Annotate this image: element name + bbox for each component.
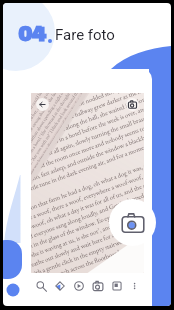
staticText: 04 — [18, 23, 46, 46]
button[interactable]: Gallery — [110, 279, 124, 293]
button[interactable]: Play — [72, 279, 86, 293]
staticText: Dale’s tremulous voice rings out: a thin… — [31, 114, 144, 236]
staticText: ‘And on that farm he had a dog, ee-i-ee-… — [31, 130, 144, 253]
staticText: a long pause, then a whisper so that no … — [31, 93, 90, 172]
staticText: g a night on my own in a hotel.’ She fro… — [31, 93, 144, 211]
staticText: and somewhere far below a door closes wi… — [67, 93, 144, 225]
button[interactable]: More options — [129, 279, 143, 293]
staticText: Ee-eye-ee-eye-oh. A glimpse of her refle… — [31, 167, 144, 273]
button[interactable]: Back — [36, 98, 49, 111]
staticText: Fare foto — [55, 26, 115, 44]
button[interactable]: Camera — [91, 279, 105, 293]
staticText: while a car passes outside and the long … — [72, 93, 144, 228]
staticText: ep, I’ll have to speak to Jonathan about… — [31, 93, 105, 182]
staticText: Dale’s tremulous voice rings out: a thin… — [31, 93, 125, 195]
button[interactable]: Camera — [126, 98, 139, 111]
staticText: reflection. ‘Pops,’ says Gertie, ‘look a… — [57, 93, 144, 218]
staticText: ep, I’ll have to speak to Jonathan about… — [31, 93, 144, 202]
staticText: The small dog was lying in a distant cor… — [31, 93, 120, 192]
staticText: Here a woof, there a woof, everywhere a … — [31, 147, 144, 270]
staticText: she looks like a joystick, doesn’t she?’… — [62, 93, 144, 221]
staticText: Here a woof, there a woof, everywhere a … — [42, 93, 144, 208]
staticText: ‘You must not tell anyone,’ he warned he… — [31, 93, 95, 176]
staticText: um?’ says Gertie. ‘Are you with us?’ I b… — [31, 93, 115, 189]
button[interactable]: Translate — [53, 279, 67, 293]
staticText: ‘And on that farm he had a dog, ee-i-ee-… — [32, 93, 135, 202]
staticText: Old Macdonald had a farm, ee-i-ee-i-oh.’… — [31, 157, 144, 273]
staticText: reflection. ‘Pops,’ says Gertie, ‘look a… — [31, 176, 144, 273]
staticText: once more before the heavy door swung sh… — [31, 93, 100, 179]
staticText: The small dog was lying in a distant cor… — [31, 104, 144, 228]
button[interactable]: Take photo — [109, 199, 156, 246]
staticText: once more before the heavy door swung sh… — [31, 93, 144, 194]
staticText: With a woof-woof here and a yip-yip ther… — [37, 93, 140, 205]
staticText: Old Macdonald had a farm, ee-i-ee-i-oh.’… — [47, 93, 144, 212]
staticText: while a car passes outside and the long … — [31, 200, 144, 273]
staticText: g a night on my own in a hotel.’ She fro… — [31, 93, 110, 185]
staticText: ‘You must not tell anyone,’ he warned he… — [31, 93, 144, 185]
staticText: With a woof-woof here and a yip-yip ther… — [31, 137, 144, 261]
staticText: um?’ says Gertie. ‘Are you with us?’ I b… — [31, 96, 144, 219]
staticText: and somewhere far below a door closes wi… — [31, 189, 144, 273]
button[interactable]: Search — [34, 279, 48, 293]
staticText: she looks like a joystick, doesn’t she?’… — [31, 186, 144, 273]
staticText: Ee-eye-ee-eye-oh. A glimpse of her refle… — [52, 93, 144, 215]
staticText: a long pause, then a whisper so that no … — [31, 93, 144, 177]
